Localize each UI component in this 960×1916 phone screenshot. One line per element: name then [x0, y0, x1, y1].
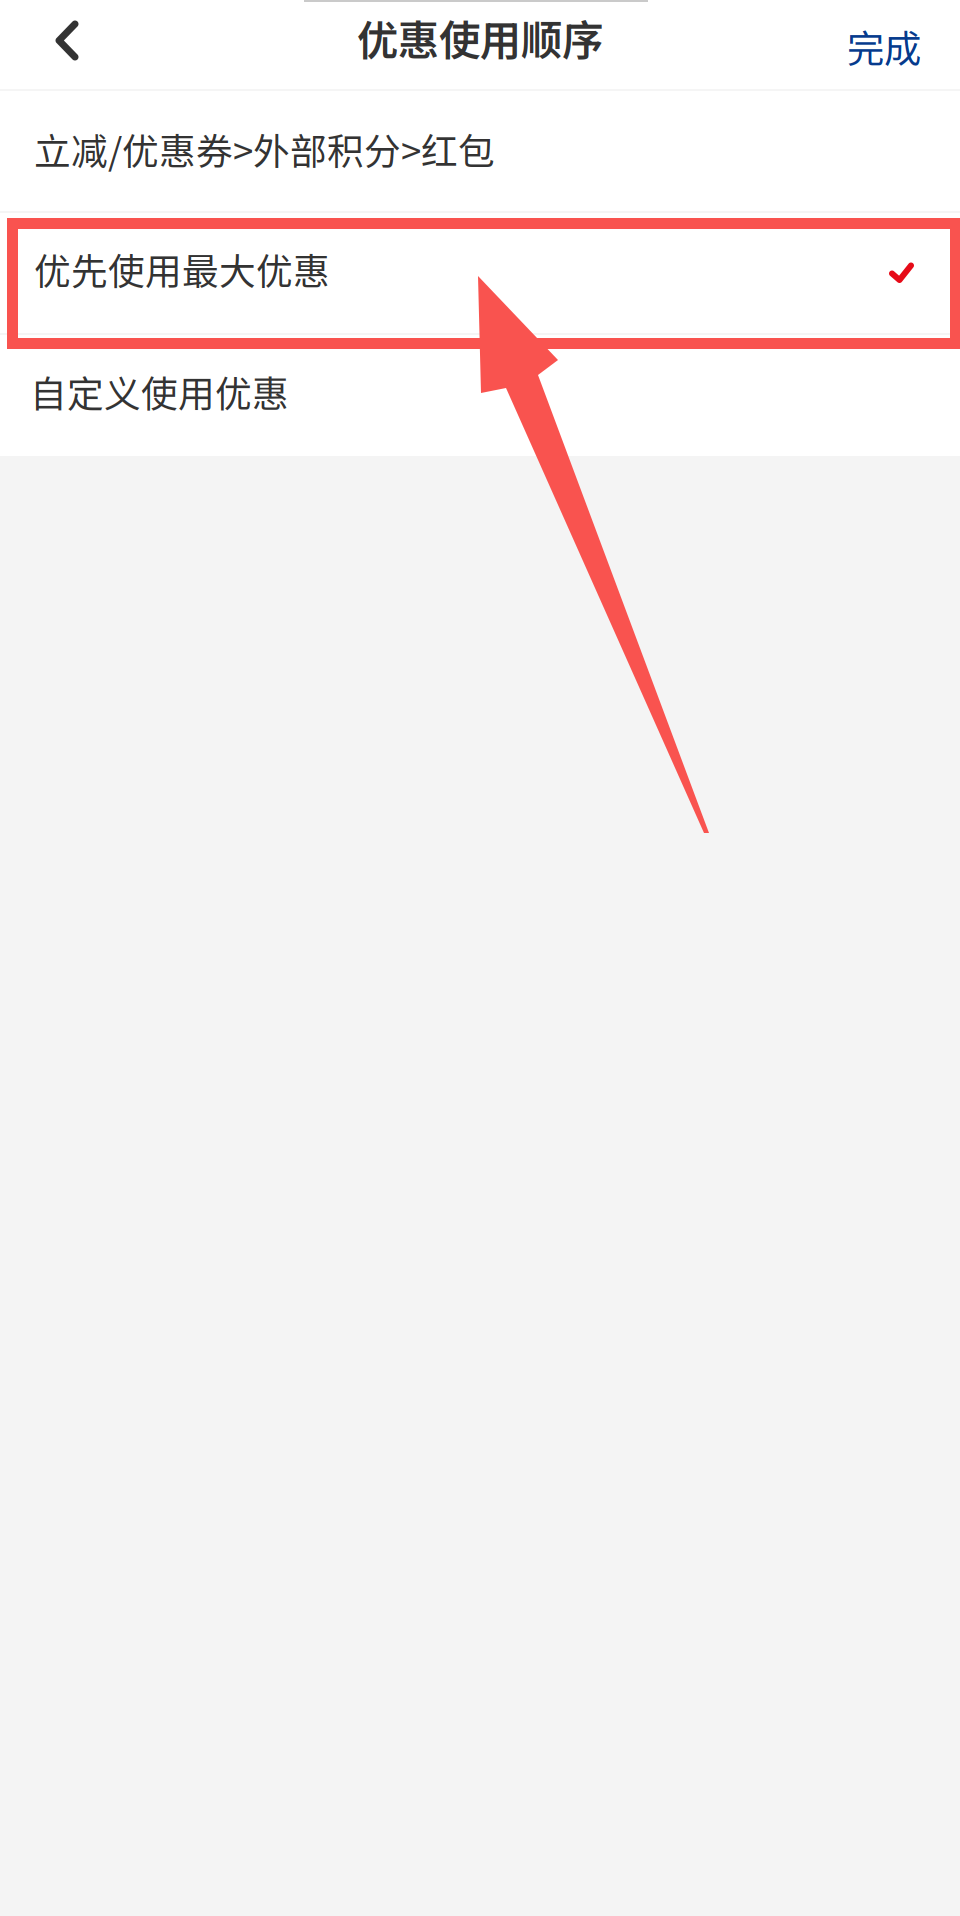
button[interactable]: 优先使用最大优惠 — [0, 213, 960, 333]
button[interactable]: Back — [0, 0, 134, 89]
button[interactable]: 完成 — [829, 0, 939, 89]
staticText: 优先使用最大优惠 — [34, 242, 330, 296]
staticText: 优惠使用顺序 — [357, 8, 603, 67]
staticText: 自定义使用优惠 — [30, 365, 289, 418]
button[interactable]: 自定义使用优惠 — [0, 335, 960, 456]
staticText: 完成 — [847, 19, 921, 74]
staticText: 立减/优惠券>外部积分>红包 — [34, 122, 495, 176]
